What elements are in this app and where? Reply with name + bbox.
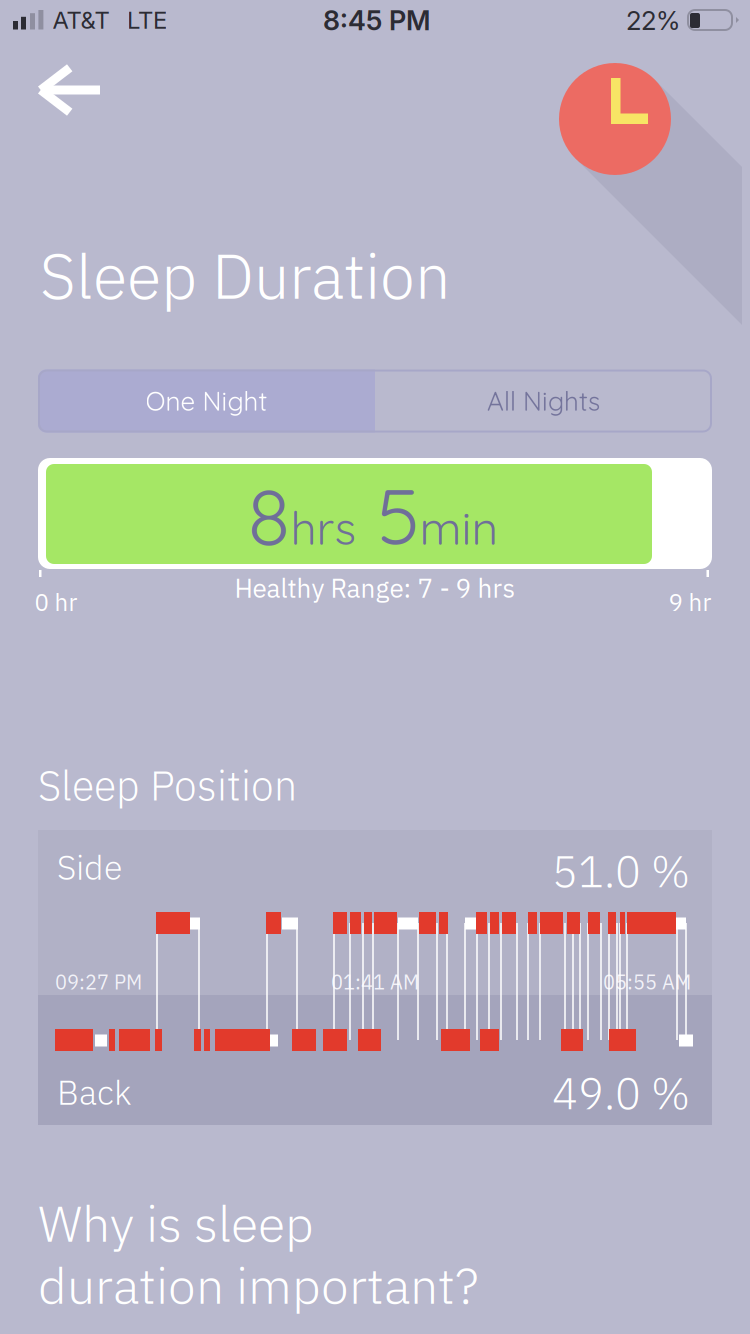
staticText: AT&T <box>52 5 109 34</box>
staticText: LTE <box>127 5 167 34</box>
staticText: min <box>419 499 498 556</box>
staticText: hrs <box>290 499 356 556</box>
button[interactable] <box>559 63 671 175</box>
staticText: Sleep Position <box>38 758 297 812</box>
staticText: 09:27 PM <box>55 969 142 995</box>
staticText: 05:55 AM <box>603 969 691 995</box>
staticText: 8:45 PM <box>323 4 431 37</box>
staticText: 5 <box>376 466 419 564</box>
staticText: 22% <box>626 5 680 36</box>
staticText: 49.0 % <box>552 1065 690 1121</box>
staticText: Healthy Range: 7 - 9 hrs <box>234 571 515 605</box>
staticText: 01:41 AM <box>331 969 419 995</box>
staticText: Back <box>57 1070 131 1114</box>
staticText: Side <box>57 845 122 889</box>
staticText: 9 hr <box>668 586 711 618</box>
staticText: One Night <box>145 385 267 417</box>
button[interactable] <box>40 64 101 116</box>
button[interactable]: All Nights <box>375 369 712 432</box>
staticText: Why is sleep <box>38 1190 314 1255</box>
button[interactable]: One Night <box>38 369 375 432</box>
staticText: 8 <box>247 466 290 564</box>
staticText: 51.0 % <box>552 843 690 899</box>
staticText: duration important? <box>38 1252 478 1317</box>
staticText: Sleep Duration <box>40 234 450 316</box>
staticText: 0 hr <box>34 586 77 618</box>
staticText: All Nights <box>487 385 600 417</box>
